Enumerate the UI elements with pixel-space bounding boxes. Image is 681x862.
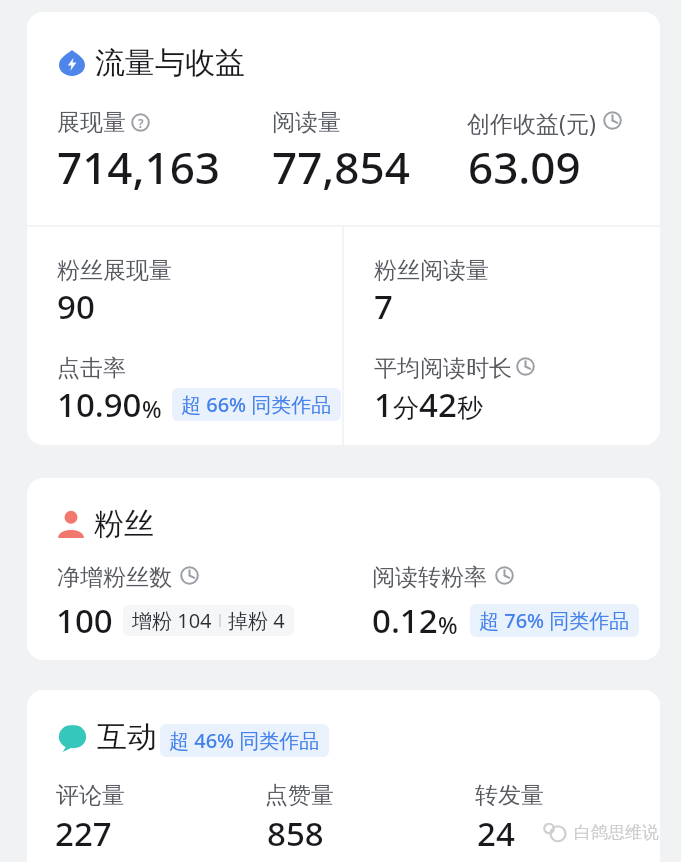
staticText: 分 xyxy=(393,392,419,425)
button[interactable]: 流量与收益 xyxy=(27,12,660,445)
staticText: % xyxy=(438,609,458,640)
staticText: 1 xyxy=(374,382,393,427)
staticText: 平均阅读时长 xyxy=(374,354,512,383)
staticText: 0.12 xyxy=(372,598,438,643)
staticText: ? xyxy=(138,115,144,131)
button[interactable]: 粉丝 xyxy=(27,478,660,660)
staticText: 净增粉丝数 xyxy=(57,563,172,592)
staticText: 点赞量 xyxy=(265,781,334,810)
staticText: 42 xyxy=(419,382,457,427)
staticText: 展现量 xyxy=(57,108,126,137)
button[interactable]: 超 76% 同类作品 xyxy=(479,604,630,637)
staticText: 秒 xyxy=(457,392,483,425)
button[interactable]: 超 46% 同类作品 xyxy=(169,724,320,757)
staticText: 评论量 xyxy=(56,781,125,810)
staticText: 超 76% 同类作品 xyxy=(479,607,630,634)
staticText: 77,854 xyxy=(272,137,410,197)
staticText: 100 xyxy=(56,598,113,643)
staticText: 粉丝阅读量 xyxy=(374,256,489,285)
staticText: 7 xyxy=(374,284,393,329)
button[interactable]: 增粉 104 xyxy=(132,605,285,636)
staticText: 阅读转粉率 xyxy=(372,563,487,592)
staticText: 转发量 xyxy=(475,781,544,810)
staticText: 白鸽思维说 xyxy=(574,822,659,843)
button[interactable] xyxy=(59,50,85,76)
staticText: 互动 xyxy=(97,718,157,756)
staticText: 714,163 xyxy=(57,137,221,197)
button[interactable]: 互动 xyxy=(27,690,660,862)
staticText: 超 66% 同类作品 xyxy=(181,391,332,418)
staticText: % xyxy=(142,393,162,424)
staticText: 858 xyxy=(267,811,324,856)
staticText: 创作收益(元) xyxy=(467,107,596,138)
staticText: 24 xyxy=(477,811,515,856)
staticText: 阅读量 xyxy=(272,108,341,137)
button[interactable] xyxy=(57,510,85,538)
staticText: 流量与收益 xyxy=(95,44,245,82)
staticText: 掉粉 4 xyxy=(228,607,285,634)
staticText: 增粉 104 xyxy=(132,607,212,634)
staticText: 63.09 xyxy=(468,137,581,197)
button[interactable]: 超 66% 同类作品 xyxy=(181,388,332,421)
staticText: 粉丝展现量 xyxy=(57,256,172,285)
staticText: 超 46% 同类作品 xyxy=(169,727,320,754)
staticText: 点击率 xyxy=(57,354,126,383)
staticText: 90 xyxy=(57,284,95,329)
staticText: 粉丝 xyxy=(94,505,154,543)
staticText: 227 xyxy=(55,811,112,856)
button[interactable] xyxy=(58,723,87,752)
staticText: 10.90 xyxy=(57,382,142,427)
